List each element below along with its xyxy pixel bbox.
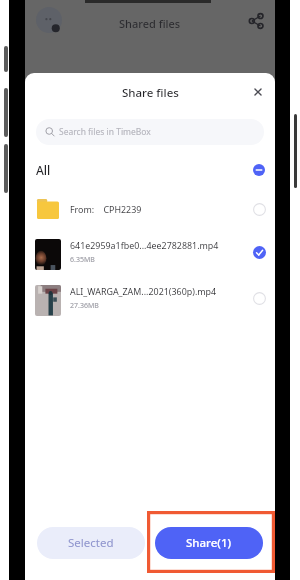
button[interactable]: Share(1) — [155, 527, 263, 559]
button[interactable]: 641e2959a1fbe0...4ee2782881.mp4 — [25, 234, 275, 270]
staticText: Shared files — [119, 16, 181, 31]
button[interactable]: Selected — [37, 527, 145, 559]
staticText: Share(1) — [186, 535, 232, 551]
staticText: All — [36, 162, 51, 178]
staticText: ALI_WARGA_ZAM...2021(360p).mp4 — [70, 285, 217, 297]
staticText: Search files in TimeBox — [59, 126, 151, 138]
button[interactable]: Profile — [36, 7, 62, 33]
button[interactable]: From: CPH2239 — [25, 191, 275, 227]
button[interactable]: Share — [248, 13, 264, 29]
staticText: Share files — [122, 85, 179, 101]
button[interactable]: ALI_WARGA_ZAM...2021(360p).mp4 — [25, 280, 275, 316]
button[interactable]: Search files in TimeBox — [36, 119, 264, 145]
staticText: 641e2959a1fbe0...4ee2782881.mp4 — [70, 239, 219, 251]
staticText: 6.35MB — [70, 255, 95, 265]
staticText: 27.36MB — [70, 301, 99, 311]
button[interactable]: All — [25, 157, 275, 183]
staticText: Selected — [68, 535, 114, 551]
button[interactable]: Close — [249, 83, 267, 101]
staticText: From: CPH2239 — [70, 203, 142, 215]
